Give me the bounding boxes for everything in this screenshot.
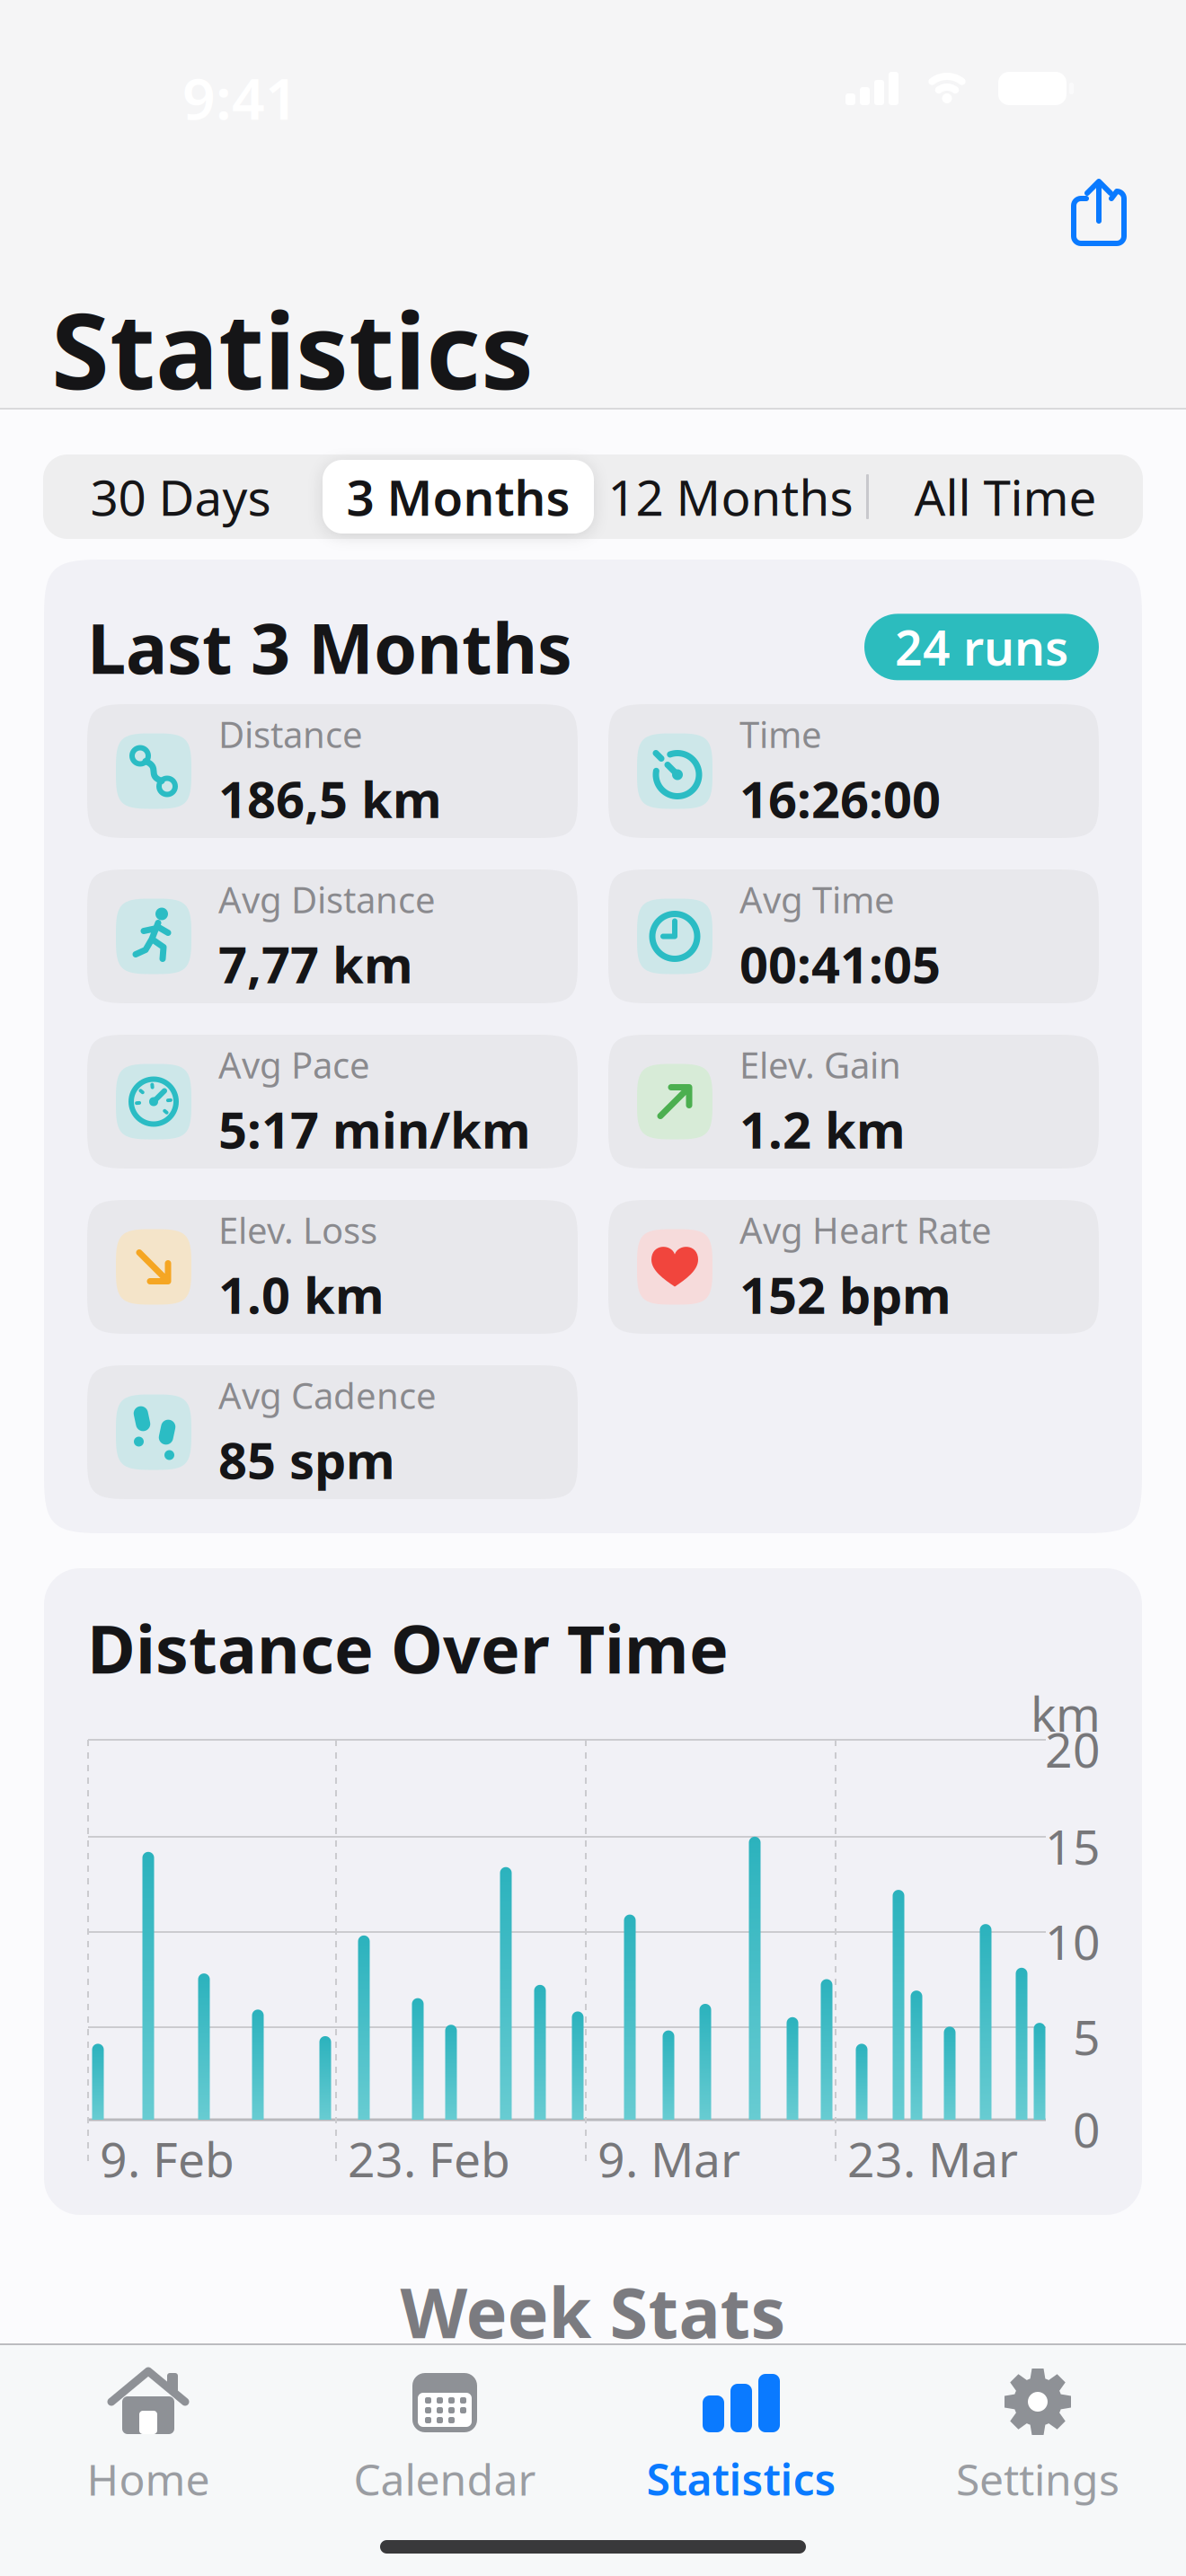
staticText: Distance Over Time (87, 1604, 729, 1692)
staticText: 186,5 km (218, 765, 442, 832)
staticText: 23. Feb (348, 2127, 510, 2190)
staticText: Avg Heart Rate (739, 1206, 992, 1254)
staticText: 00:41:05 (739, 930, 941, 997)
staticText: 16:26:00 (739, 765, 941, 832)
staticText: 12 Months (608, 464, 853, 529)
staticText: 152 bpm (739, 1261, 951, 1328)
staticText: Statistics (646, 2450, 836, 2507)
staticText: 23. Mar (847, 2127, 1018, 2190)
staticText: 0 (1073, 2097, 1101, 2161)
staticText: 1.2 km (739, 1096, 906, 1163)
staticText: 1.0 km (218, 1261, 385, 1328)
staticText: 9. Feb (100, 2127, 235, 2190)
button[interactable]: Home (0, 2368, 296, 2507)
staticText: 85 spm (218, 1426, 395, 1493)
staticText: Avg Time (739, 876, 895, 923)
staticText: 15 (1045, 1814, 1101, 1878)
button[interactable]: 12 Months (593, 454, 868, 539)
staticText: km (1031, 1681, 1101, 1745)
staticText: 7,77 km (218, 930, 413, 997)
button[interactable]: Settings (889, 2368, 1186, 2507)
staticText: 20 (1045, 1717, 1101, 1781)
button[interactable]: 30 Days (43, 454, 318, 539)
button[interactable]: All Time (868, 454, 1143, 539)
staticText: Avg Pace (218, 1041, 370, 1089)
staticText: Distance (218, 710, 363, 758)
staticText: All Time (914, 464, 1097, 529)
button[interactable]: Statistics (593, 2368, 889, 2507)
staticText: 24 runs (895, 615, 1068, 679)
staticText: Settings (956, 2450, 1120, 2507)
staticText: Calendar (354, 2450, 536, 2507)
staticText: Time (739, 710, 822, 758)
staticText: Elev. Loss (218, 1206, 377, 1254)
staticText: Home (87, 2450, 210, 2507)
staticText: Week Stats (400, 2265, 786, 2357)
staticText: 9:41 (182, 59, 298, 136)
button[interactable]: 3 Months (323, 460, 594, 534)
staticText: Avg Distance (218, 876, 436, 923)
staticText: Avg Cadence (218, 1371, 437, 1419)
button[interactable]: Calendar (296, 2368, 593, 2507)
staticText: 30 Days (90, 464, 271, 529)
staticText: Elev. Gain (739, 1041, 901, 1089)
staticText: 5 (1073, 2005, 1101, 2068)
staticText: 5:17 min/km (218, 1096, 531, 1163)
staticText: 10 (1045, 1910, 1101, 1973)
staticText: 9. Mar (597, 2127, 740, 2190)
staticText: Statistics (51, 278, 534, 418)
staticText: Last 3 Months (87, 601, 572, 693)
button[interactable]: Share (1071, 178, 1127, 246)
staticText: 3 Months (346, 464, 570, 529)
